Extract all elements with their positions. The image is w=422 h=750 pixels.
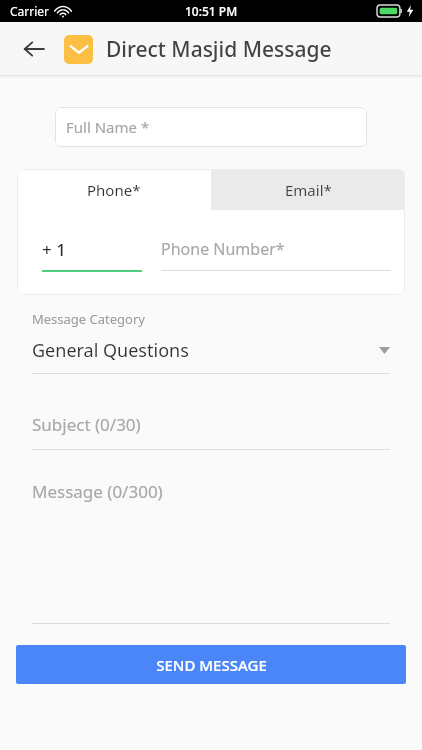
button[interactable]: Phone* <box>17 169 211 210</box>
staticText: + 1 <box>42 238 66 261</box>
button[interactable]: Phone Number* <box>161 238 391 271</box>
staticText: SEND MESSAGE <box>156 655 267 675</box>
button[interactable]: Subject (0/30) <box>32 413 390 450</box>
staticText: Phone Number* <box>161 238 285 260</box>
button[interactable]: Message Category <box>32 310 390 374</box>
button[interactable]: SEND MESSAGE <box>16 645 406 684</box>
staticText: General Questions <box>32 338 379 363</box>
staticText: Carrier <box>10 3 50 19</box>
staticText: Subject (0/30) <box>32 413 141 436</box>
staticText: Message (0/300) <box>32 480 163 503</box>
staticText: Full Name * <box>66 117 150 137</box>
button[interactable]: Message (0/300) <box>32 480 390 624</box>
button[interactable]: + 1 <box>42 238 142 272</box>
button[interactable]: Full Name * <box>55 107 367 147</box>
staticText: Message Category <box>32 310 145 328</box>
staticText: Email* <box>285 180 332 200</box>
button[interactable]: Email* <box>211 169 405 210</box>
staticText: Phone* <box>87 180 141 200</box>
staticText: Direct Masjid Message <box>106 35 332 64</box>
button[interactable]: Back <box>14 29 54 69</box>
staticText: 10:51 PM <box>185 3 238 19</box>
